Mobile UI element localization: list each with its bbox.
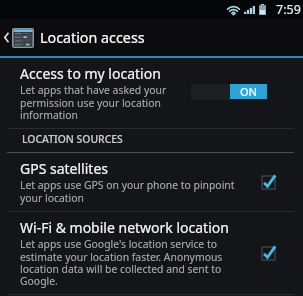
staticText: Let apps that have asked your permission… [20,83,188,122]
staticText: Wi-Fi & mobile network location [20,218,229,237]
staticText: GPS satellites [20,159,108,178]
staticText: Let apps use Google's location service t… [20,237,253,288]
button[interactable]: Access to my location, On [191,83,267,100]
staticText: 7:59 [276,1,301,18]
button[interactable]: GPS satellites [0,153,303,211]
button[interactable]: Navigate up, Location access [0,19,303,56]
button[interactable]: Checked [259,173,277,191]
button[interactable]: Checked [259,244,277,262]
staticText: LOCATION SOURCES [22,132,123,146]
staticText: Let apps use GPS on your phone to pinpoi… [20,178,253,205]
staticText: Location access [40,28,145,47]
button[interactable]: Wi-Fi & mobile network location [0,212,303,294]
button[interactable]: Access to my location [0,58,303,128]
staticText: Access to my location [20,64,161,83]
staticText: ON [240,84,258,99]
